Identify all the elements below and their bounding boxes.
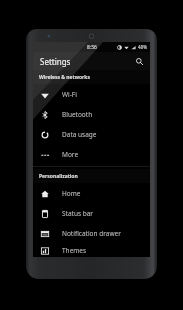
staticText: Notification drawer bbox=[62, 229, 121, 238]
staticText: Wireless & networks bbox=[39, 74, 90, 81]
staticText: Data usage bbox=[62, 130, 97, 139]
staticText: Personalization bbox=[39, 173, 78, 180]
button[interactable]: Themes bbox=[33, 243, 150, 257]
staticText: Status bar bbox=[62, 209, 94, 218]
staticText: More bbox=[62, 150, 79, 159]
button[interactable]: Wi-Fi bbox=[33, 84, 150, 104]
button[interactable]: Notification drawer bbox=[33, 223, 150, 243]
staticText: 8:56 bbox=[87, 44, 97, 51]
staticText: Wi-Fi bbox=[62, 90, 77, 99]
button[interactable]: More bbox=[33, 144, 150, 164]
button[interactable]: Status bar bbox=[33, 203, 150, 223]
button[interactable]: Bluetooth bbox=[33, 104, 150, 124]
staticText: Bluetooth bbox=[62, 110, 93, 119]
button[interactable]: Home bbox=[33, 183, 150, 203]
staticText: 48% bbox=[138, 44, 147, 50]
button[interactable]: Data usage bbox=[33, 124, 150, 144]
staticText: Home bbox=[62, 189, 81, 198]
staticText: Themes bbox=[62, 246, 87, 255]
button[interactable]: Search bbox=[133, 55, 146, 68]
staticText: Settings bbox=[40, 56, 71, 67]
